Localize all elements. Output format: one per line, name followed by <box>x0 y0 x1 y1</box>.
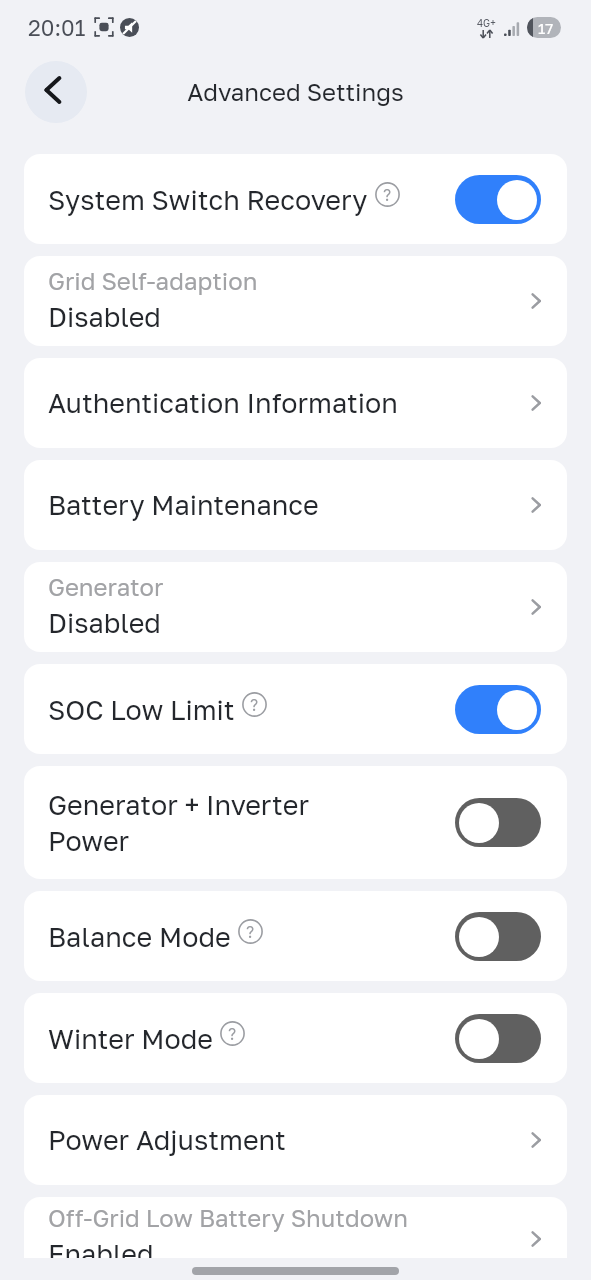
staticText: Grid Self-adaption <box>48 266 258 295</box>
staticText: Balance Mode <box>48 921 231 953</box>
button[interactable]: System Switch Recovery toggle <box>455 175 541 224</box>
button[interactable]: SOC Low Limit <box>24 664 567 754</box>
staticText: Disabled <box>48 301 161 333</box>
staticText: 20:01 <box>28 14 86 40</box>
button[interactable]: Winter Mode <box>24 993 567 1083</box>
staticText: Enabled <box>48 1238 154 1270</box>
button[interactable]: System Switch Recovery <box>24 154 567 244</box>
button[interactable]: Off-Grid Low Battery Shutdown <box>24 1197 567 1280</box>
button[interactable]: Authentication Information <box>24 358 567 448</box>
button[interactable]: SOC Low Limit toggle <box>455 685 541 734</box>
staticText: Generator <box>48 572 164 601</box>
staticText: Winter Mode <box>48 1023 213 1055</box>
button[interactable]: Generator + Inverter Power toggle <box>455 798 541 847</box>
button[interactable]: Balance Mode toggle <box>455 912 541 961</box>
staticText: Advanced Settings <box>187 77 404 106</box>
button[interactable]: Battery Maintenance <box>24 460 567 550</box>
staticText: ? <box>246 922 255 941</box>
staticText: ? <box>383 185 392 204</box>
staticText: SOC Low Limit <box>48 694 235 726</box>
staticText: Off-Grid Low Battery Shutdown <box>48 1203 409 1232</box>
staticText: Power Adjustment <box>48 1124 286 1156</box>
staticText: Authentication Information <box>48 387 398 419</box>
staticText: Battery Maintenance <box>48 489 319 521</box>
button[interactable]: Generator <box>24 562 567 652</box>
staticText: ? <box>250 695 259 714</box>
button[interactable]: Generator + Inverter Power <box>24 766 567 879</box>
staticText: 17 <box>538 19 554 37</box>
staticText: System Switch Recovery <box>48 184 368 216</box>
staticText: Disabled <box>48 607 161 639</box>
button[interactable]: Winter Mode toggle <box>455 1014 541 1063</box>
button[interactable]: Back <box>25 61 87 123</box>
staticText: 4G+ <box>477 17 496 29</box>
button[interactable]: Grid Self-adaption <box>24 256 567 346</box>
button[interactable]: Power Adjustment <box>24 1095 567 1185</box>
staticText: ? <box>228 1024 237 1043</box>
staticText: Generator + Inverter Power <box>48 789 338 857</box>
button[interactable]: Balance Mode <box>24 891 567 981</box>
